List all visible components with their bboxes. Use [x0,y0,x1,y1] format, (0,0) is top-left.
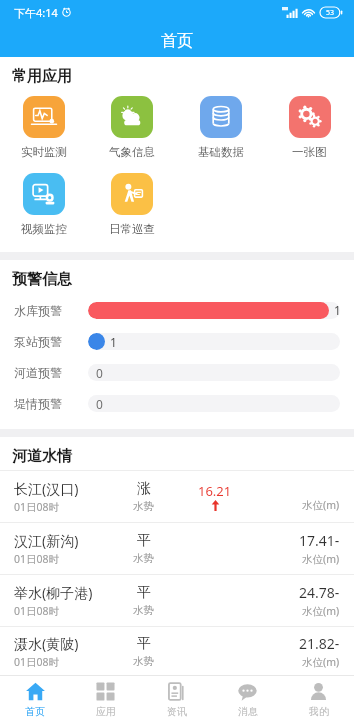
staticText: 堤情预警 [14,396,62,411]
button[interactable]: 实时监测 [0,92,88,163]
staticText: 水势 [133,552,154,565]
staticText: 水库预警 [14,303,62,318]
staticText: 河道水情 [12,447,72,466]
staticText: 汉江(新沟) [14,531,79,550]
button[interactable]: 一张图 [265,92,354,163]
button[interactable]: 汉江(新沟) [0,523,354,574]
staticText: 水势 [133,604,154,617]
button[interactable]: 基础数据 [176,92,265,163]
staticText: 举水(柳子港) [14,583,93,602]
staticText: 0 [96,365,103,381]
staticText: 视频监控 [21,222,67,236]
staticText: 水位(m) [302,655,340,669]
staticText: 0 [96,396,103,412]
staticText: 预警信息 [12,270,72,289]
staticText: 下午4:14 [14,5,58,20]
staticText: 资讯 [167,705,187,718]
staticText: 河道预警 [14,365,62,380]
staticText: 1 [110,334,117,350]
button[interactable]: 滠水(黄陂) [0,627,354,675]
staticText: 实时监测 [21,145,67,159]
staticText: 平 [137,635,151,653]
button[interactable]: 长江(汉口) [0,471,354,522]
staticText: 01日08时 [14,604,60,618]
button[interactable]: 堤情预警 [0,388,354,419]
staticText: 气象信息 [109,145,155,159]
staticText: 水势 [133,655,154,668]
staticText: 我的 [309,705,329,718]
staticText: 16.21 [198,482,232,500]
staticText: 21.82- [299,634,340,653]
button[interactable]: 河道预警 [0,357,354,388]
staticText: 15 [334,302,340,319]
staticText: 17.41- [299,531,340,550]
staticText: 一张图 [292,145,327,159]
button[interactable]: 首页 [0,676,70,723]
staticText: 平 [137,532,151,550]
staticText: 首页 [161,31,193,51]
staticText: 日常巡查 [109,222,155,236]
staticText: 水位(m) [302,552,340,566]
staticText: 泵站预警 [14,334,62,349]
staticText: 01日08时 [14,655,60,669]
staticText: 01日08时 [14,552,60,566]
button[interactable]: 消息 [212,676,283,723]
staticText: 01日08时 [14,500,60,514]
staticText: 消息 [238,705,258,718]
button[interactable]: 资讯 [141,676,212,723]
button[interactable]: 日常巡查 [88,169,176,240]
button[interactable]: 视频监控 [0,169,88,240]
staticText: 滠水(黄陂) [14,634,79,653]
button[interactable]: 泵站预警 [0,326,354,357]
staticText: 长江(汉口) [14,479,79,498]
button[interactable]: 我的 [283,676,354,723]
staticText: 常用应用 [12,67,72,86]
staticText: 涨 [137,480,151,498]
staticText: 水势 [133,500,154,513]
staticText: 基础数据 [198,145,244,159]
staticText: 平 [137,584,151,602]
staticText: 水位(m) [302,604,340,618]
button[interactable]: 水库预警 [0,295,354,326]
staticText: 首页 [25,705,45,718]
button[interactable]: 气象信息 [88,92,176,163]
staticText: 水位(m) [302,498,340,512]
button[interactable]: 举水(柳子港) [0,575,354,626]
staticText: 应用 [96,705,116,718]
button[interactable]: 应用 [70,676,141,723]
staticText: 53 [326,8,335,18]
staticText: 24.78- [299,583,340,602]
